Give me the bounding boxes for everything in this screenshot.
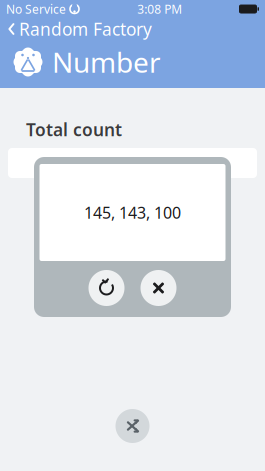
staticText: No Service	[6, 1, 66, 17]
button[interactable]: Close	[140, 270, 176, 306]
staticText: Number	[52, 43, 161, 81]
staticText: Total count	[26, 118, 122, 141]
button[interactable]: Shuffle	[115, 409, 149, 443]
button[interactable]: Regenerate	[88, 270, 124, 306]
staticText: 3:08 PM	[137, 1, 182, 17]
button[interactable]: Random Factory	[0, 18, 265, 40]
staticText: 145, 143, 100	[84, 202, 181, 223]
staticText: 3	[128, 152, 137, 174]
staticText: Random Factory	[19, 17, 152, 40]
